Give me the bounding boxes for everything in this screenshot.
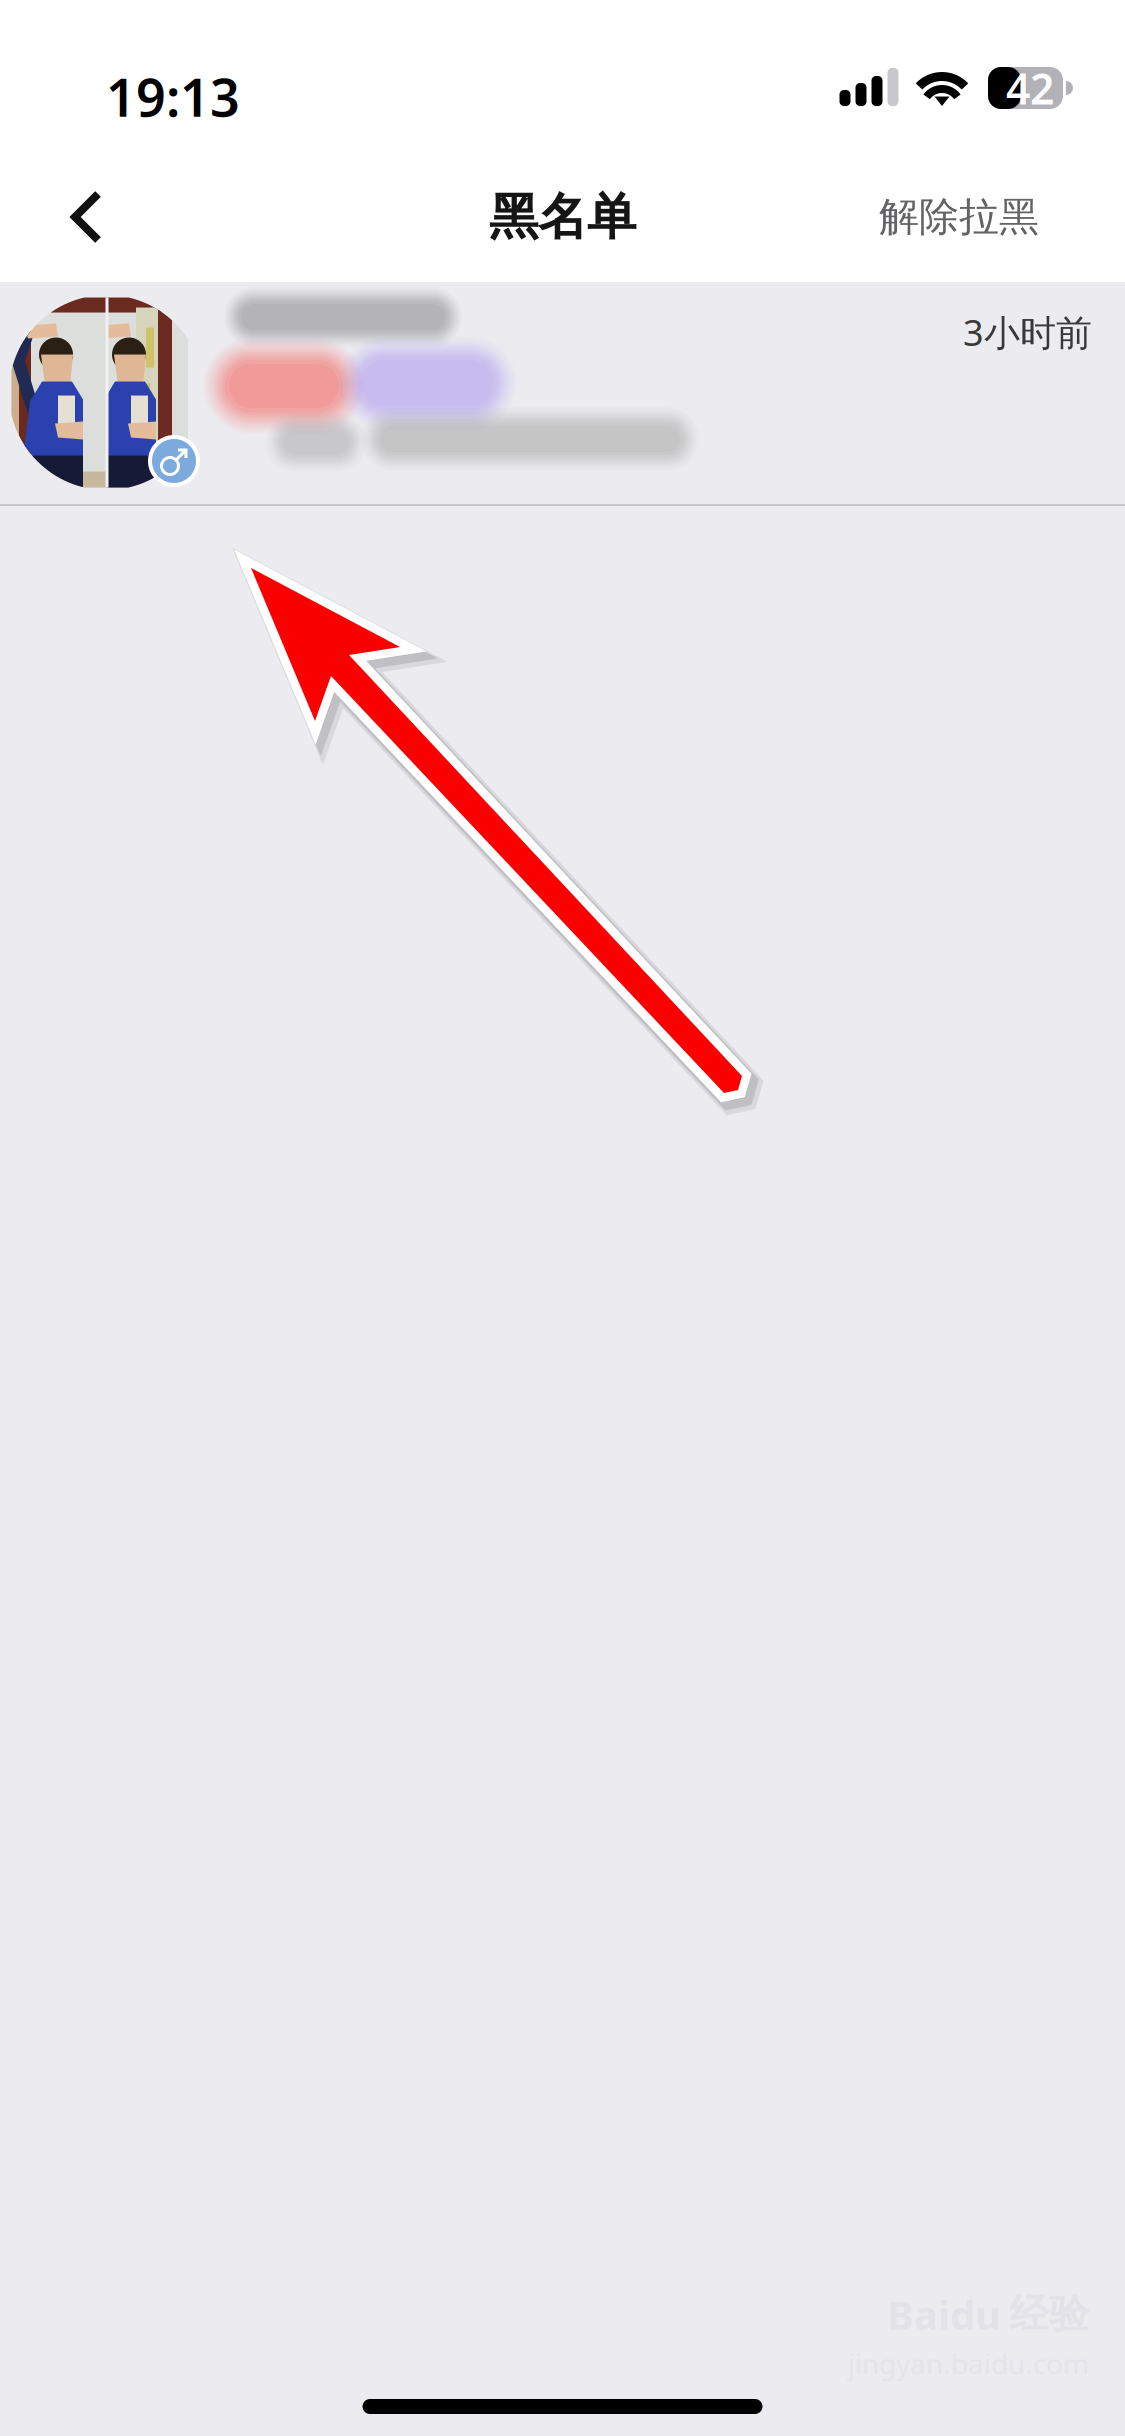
staticText: 42 [1006,60,1054,116]
staticText: 经验 [1009,2290,1089,2339]
button[interactable]: 解除拉黑 [849,152,1069,282]
staticText: 黑名单 [489,187,636,247]
button[interactable]: Back [32,152,142,282]
button[interactable]: 3小时前 [0,282,1125,504]
staticText: Baidu [887,2288,1001,2341]
staticText: 3小时前 [963,308,1092,356]
staticText: 19:13 [106,62,240,131]
staticText: 解除拉黑 [879,192,1039,241]
